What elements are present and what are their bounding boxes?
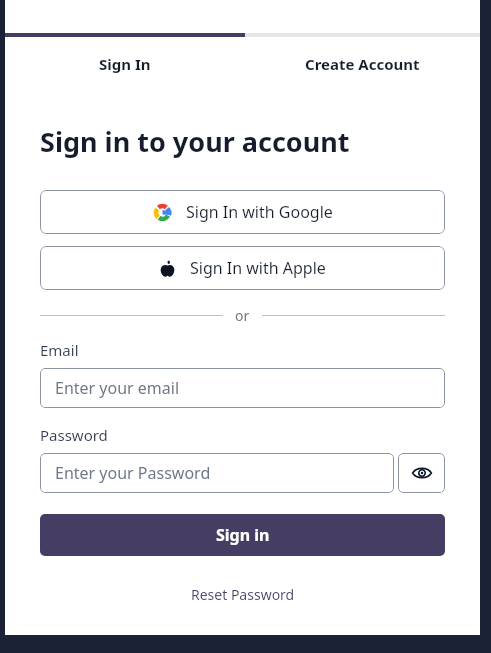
button[interactable]: Sign In [5, 37, 245, 90]
staticText: Create Account [305, 54, 420, 74]
staticText: Enter your Password [55, 462, 211, 484]
staticText: Password [40, 425, 108, 445]
button[interactable]: Create Account [245, 37, 480, 90]
staticText: Enter your email [55, 377, 180, 399]
button[interactable]: Sign in [40, 514, 445, 556]
button[interactable]: Reset Password [185, 581, 301, 608]
staticText: Sign in to your account [40, 123, 350, 160]
button[interactable]: Enter your email [40, 368, 445, 408]
button[interactable]: Enter your Password [40, 453, 394, 493]
staticText: Sign in [216, 524, 270, 546]
staticText: or [235, 306, 250, 325]
staticText: Sign In with Google [186, 201, 333, 223]
staticText: Reset Password [191, 585, 295, 604]
button[interactable]: Show password [398, 453, 445, 493]
staticText: Sign In [99, 54, 151, 74]
button[interactable]: Sign In with Apple [40, 246, 445, 290]
button[interactable]: Sign In with Google [40, 190, 445, 234]
staticText: Sign In with Apple [190, 257, 326, 279]
staticText: Email [40, 340, 79, 360]
